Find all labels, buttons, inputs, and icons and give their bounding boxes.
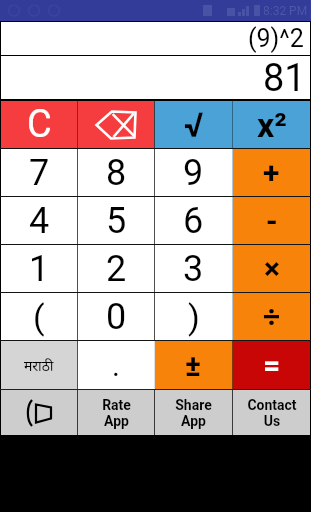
button[interactable] xyxy=(1,390,77,435)
button[interactable]: 6 xyxy=(155,197,232,244)
button[interactable]: 7 xyxy=(1,149,77,196)
staticText: = xyxy=(263,348,281,383)
button[interactable]: + xyxy=(233,149,310,196)
staticText: ± xyxy=(185,348,202,383)
button[interactable]: 4 xyxy=(1,197,77,244)
button[interactable]: 0 xyxy=(78,293,154,340)
staticText: 1 xyxy=(29,248,50,290)
button[interactable]: √ xyxy=(155,101,232,148)
button[interactable]: 3 xyxy=(155,245,232,292)
staticText: x² xyxy=(257,105,287,145)
staticText: 2 xyxy=(106,248,127,290)
button[interactable]: 2 xyxy=(78,245,154,292)
staticText: . xyxy=(112,348,120,383)
staticText: 7 xyxy=(29,152,50,194)
staticText: ( xyxy=(33,297,45,337)
staticText: मराठी xyxy=(24,356,54,375)
button[interactable]: Rate App xyxy=(78,390,154,435)
button[interactable]: - xyxy=(233,197,310,244)
staticText: ÷ xyxy=(263,299,281,334)
staticText: 8 xyxy=(106,152,127,194)
button[interactable]: Share App xyxy=(155,390,232,435)
staticText: 81 xyxy=(263,56,306,99)
staticText: + xyxy=(263,155,280,190)
staticText: 6 xyxy=(183,200,204,242)
staticText: ) xyxy=(188,297,200,337)
staticText: 4 xyxy=(29,200,50,242)
button[interactable] xyxy=(78,101,154,148)
button[interactable]: ( xyxy=(1,293,77,340)
staticText: × xyxy=(264,251,280,286)
staticText: 3 xyxy=(183,248,204,290)
staticText: (9)^2 xyxy=(248,24,304,53)
staticText: √ xyxy=(184,105,204,145)
button[interactable]: 5 xyxy=(78,197,154,244)
button[interactable]: ) xyxy=(155,293,232,340)
button[interactable]: मराठी xyxy=(1,341,77,389)
staticText: 5 xyxy=(106,200,127,242)
button[interactable]: C xyxy=(1,101,77,148)
button[interactable]: ÷ xyxy=(233,293,310,340)
staticText: 0 xyxy=(106,296,127,338)
staticText: 9 xyxy=(183,152,204,194)
staticText: C xyxy=(27,102,52,147)
staticText: Contact Us xyxy=(247,397,297,429)
button[interactable]: × xyxy=(233,245,310,292)
button[interactable]: 1 xyxy=(1,245,77,292)
staticText: Rate App xyxy=(102,397,131,429)
staticText: Share App xyxy=(175,397,212,429)
button[interactable]: 9 xyxy=(155,149,232,196)
button[interactable]: x² xyxy=(233,101,310,148)
staticText: - xyxy=(266,203,278,238)
staticText: 8:32 PM xyxy=(263,4,308,18)
button[interactable]: = xyxy=(233,341,310,389)
button[interactable]: ± xyxy=(155,341,232,389)
button[interactable]: Contact Us xyxy=(233,390,310,435)
button[interactable]: . xyxy=(78,341,154,389)
button[interactable]: 8 xyxy=(78,149,154,196)
